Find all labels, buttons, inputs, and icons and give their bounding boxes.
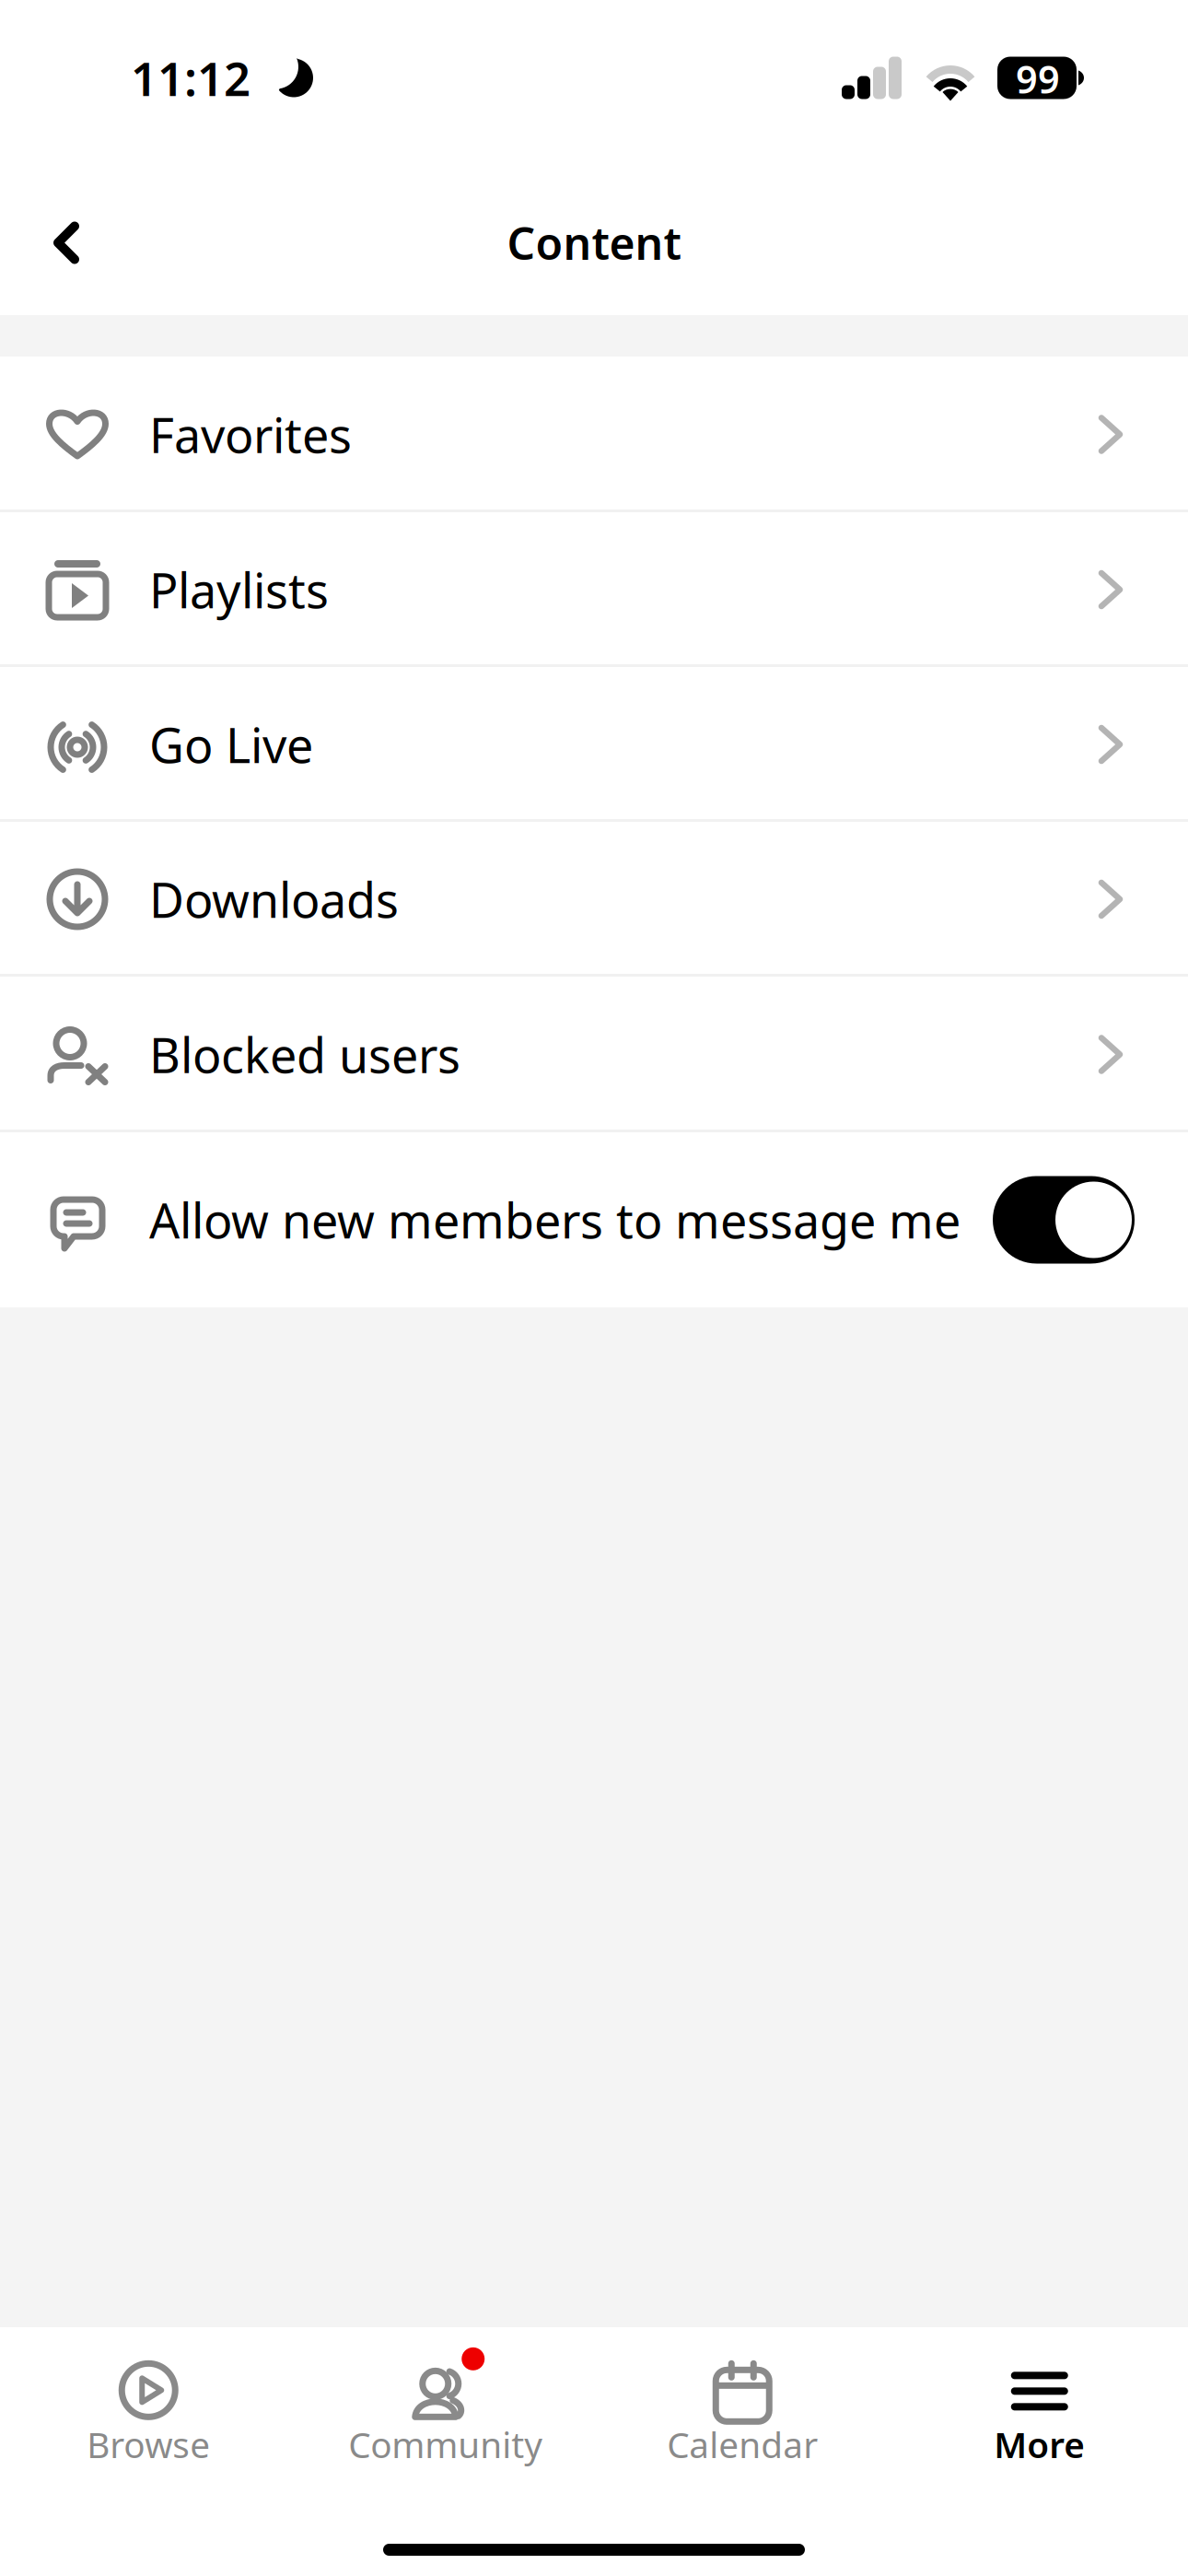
button[interactable]: Allow new members to message me bbox=[0, 1132, 1188, 1307]
button[interactable]: Calendar bbox=[594, 2329, 891, 2472]
button[interactable]: Blocked users bbox=[0, 977, 1188, 1132]
staticText: Allow new members to message me bbox=[149, 1188, 961, 1252]
button[interactable]: Downloads bbox=[0, 822, 1188, 977]
button[interactable]: Favorites bbox=[0, 357, 1188, 512]
staticText: Playlists bbox=[149, 558, 329, 622]
button[interactable]: Back bbox=[28, 204, 105, 281]
button[interactable]: Go Live bbox=[0, 667, 1188, 822]
staticText: Calendar bbox=[667, 2421, 818, 2468]
staticText: Go Live bbox=[149, 713, 313, 776]
staticText: Blocked users bbox=[149, 1023, 460, 1086]
staticText: Browse bbox=[87, 2421, 210, 2468]
button[interactable]: Browse bbox=[0, 2329, 297, 2472]
staticText: Community bbox=[348, 2421, 543, 2468]
staticText: Favorites bbox=[149, 403, 352, 466]
staticText: 11:12 bbox=[131, 47, 250, 109]
button[interactable]: Playlists bbox=[0, 512, 1188, 667]
button[interactable]: Community bbox=[297, 2329, 594, 2472]
button[interactable]: More bbox=[891, 2329, 1188, 2472]
staticText: Content bbox=[507, 213, 681, 272]
staticText: 99 bbox=[1016, 54, 1060, 104]
staticText: Downloads bbox=[149, 867, 399, 931]
staticText: More bbox=[994, 2421, 1085, 2468]
